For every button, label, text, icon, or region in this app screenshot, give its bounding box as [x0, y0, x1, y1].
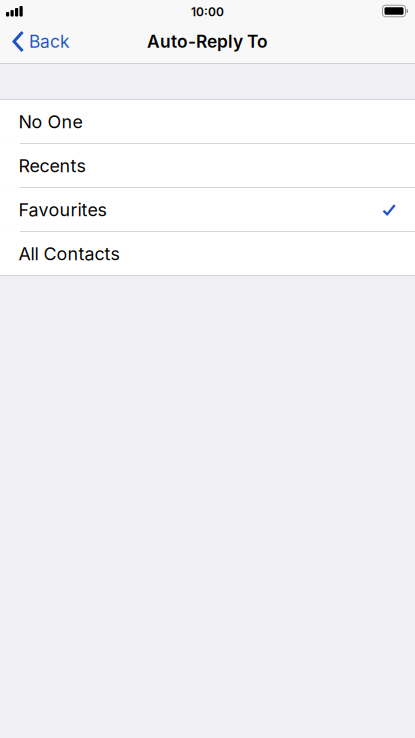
staticText: No One [18, 111, 82, 132]
staticText: Back [29, 31, 70, 52]
staticText: Recents [18, 155, 85, 176]
button[interactable]: Recents [0, 144, 415, 187]
button[interactable]: No One [0, 100, 415, 143]
button[interactable]: Favourites [0, 188, 415, 231]
staticText: All Contacts [18, 243, 119, 264]
staticText: Auto-Reply To [147, 31, 268, 52]
staticText: Favourites [18, 199, 106, 220]
staticText: 10:00 [191, 5, 224, 19]
button[interactable]: All Contacts [0, 232, 415, 275]
button[interactable]: Back [0, 31, 70, 53]
